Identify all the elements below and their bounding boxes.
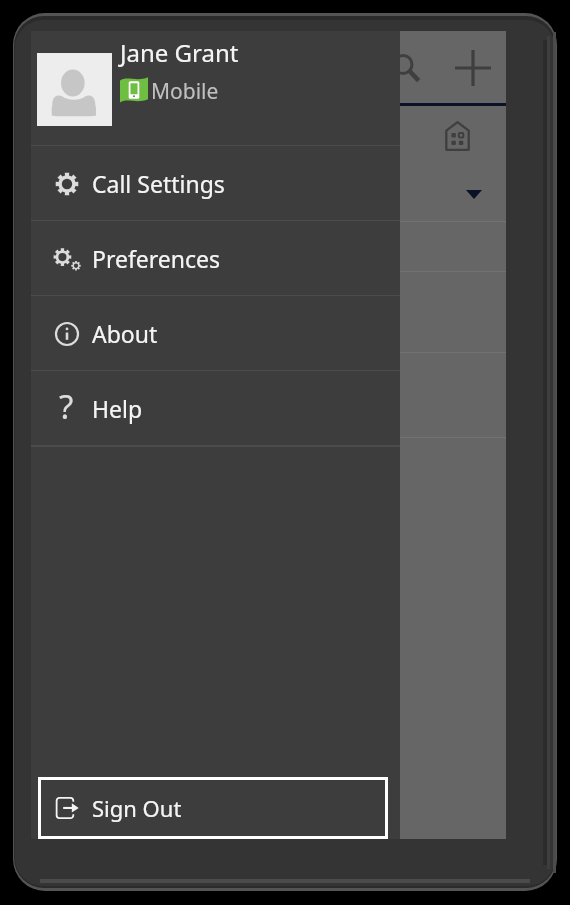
staticText: Preferences xyxy=(92,243,221,274)
staticText: Sign Out xyxy=(92,793,182,823)
button[interactable]: Sign Out xyxy=(41,780,385,836)
staticText: Call Settings xyxy=(92,168,225,199)
staticText: Jane Grant xyxy=(120,36,239,69)
button[interactable]: Add xyxy=(450,45,496,91)
button[interactable]: ? xyxy=(31,371,400,446)
staticText: About xyxy=(92,318,158,349)
button[interactable]: Preferences xyxy=(31,221,400,296)
staticText: ? xyxy=(59,384,74,429)
button[interactable]: Property xyxy=(437,116,477,156)
button[interactable]: About xyxy=(31,296,400,371)
staticText: Help xyxy=(92,393,143,424)
button[interactable]: Search xyxy=(383,45,429,91)
button[interactable]: Call Settings xyxy=(31,146,400,221)
staticText: Mobile xyxy=(151,77,219,106)
